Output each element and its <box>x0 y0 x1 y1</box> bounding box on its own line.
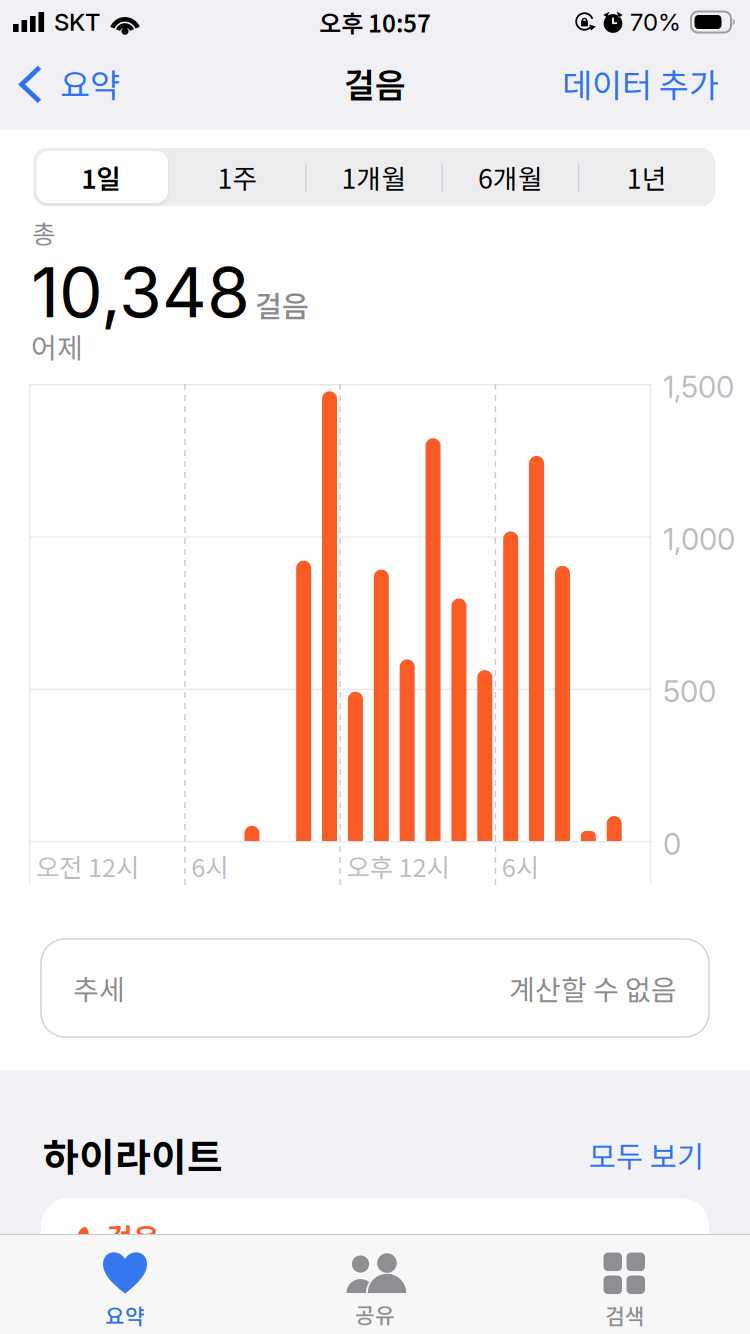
button[interactable]: 6개월 <box>442 148 579 206</box>
staticText: 오후 12시 <box>346 848 449 884</box>
staticText: 6시 <box>191 848 228 884</box>
staticText: 걸음 <box>344 59 406 107</box>
button[interactable]: 1년 <box>579 148 715 206</box>
staticText: SKT <box>54 7 100 36</box>
staticText: 추세 <box>73 968 125 1008</box>
button[interactable]: 1개월 <box>306 148 442 206</box>
staticText: 오전 12시 <box>36 848 139 884</box>
staticText: 데이터 추가 <box>562 59 719 107</box>
staticText: 요약 <box>105 1300 145 1330</box>
button[interactable]: 1주 <box>169 148 306 206</box>
staticText: 총 <box>32 214 55 251</box>
staticText: 1년 <box>627 158 667 196</box>
staticText: 모두 보기 <box>589 1134 704 1176</box>
button[interactable]: 추세 <box>41 939 709 1037</box>
button[interactable]: 검색 <box>500 1234 750 1334</box>
button[interactable]: 모두 보기 <box>589 1134 704 1176</box>
button[interactable]: 공유 <box>250 1234 500 1334</box>
button[interactable]: 요약 <box>0 48 132 118</box>
staticText: 하이라이트 <box>43 1127 223 1183</box>
staticText: 6시 <box>502 848 539 884</box>
staticText: 요약 <box>60 59 120 107</box>
button[interactable]: 요약 <box>0 1234 250 1334</box>
staticText: 1주 <box>218 158 258 196</box>
staticText: 1,000 <box>663 522 735 557</box>
staticText: 공유 <box>355 1299 395 1329</box>
button[interactable]: 1일 <box>33 148 169 206</box>
staticText: 0 <box>663 826 681 862</box>
staticText: 걸음 <box>255 283 309 326</box>
staticText: 1일 <box>81 158 121 196</box>
staticText: 500 <box>663 674 716 709</box>
staticText: 1개월 <box>341 158 406 196</box>
staticText: 오후 10:57 <box>319 5 431 39</box>
staticText: 6개월 <box>478 158 543 196</box>
staticText: 10,348 <box>31 250 250 334</box>
staticText: 어제 <box>31 326 83 366</box>
button[interactable]: 데이터 추가 <box>550 48 750 118</box>
staticText: 검색 <box>605 1300 645 1330</box>
staticText: 70% <box>630 7 681 36</box>
staticText: 1,500 <box>663 369 734 405</box>
staticText: 걸음 <box>106 1216 160 1258</box>
staticText: 계산할 수 없음 <box>509 968 677 1008</box>
